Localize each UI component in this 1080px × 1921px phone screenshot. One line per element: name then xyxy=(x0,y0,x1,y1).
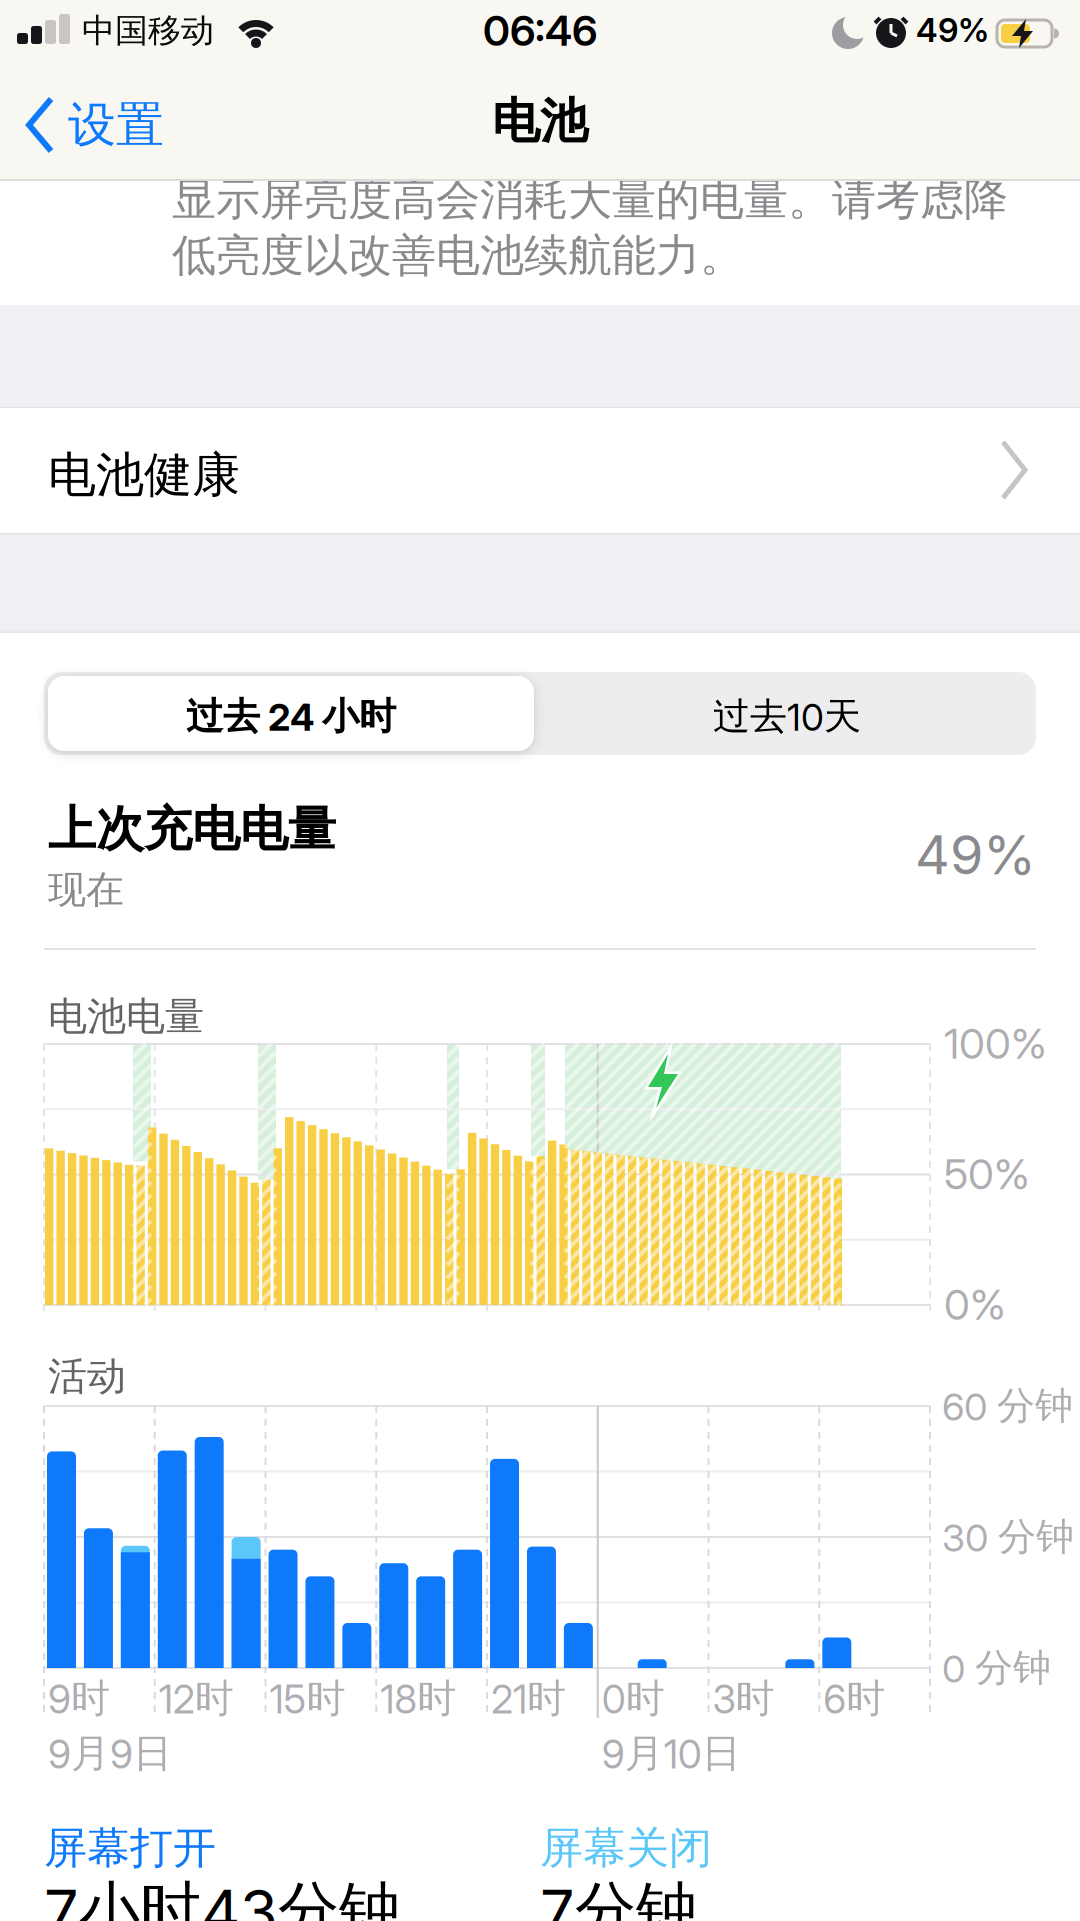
staticText: 设置 xyxy=(68,95,164,155)
staticText: 显示屏亮度高会消耗大量的电量。请考虑降 xyxy=(172,172,1008,227)
staticText: 49% xyxy=(915,822,1036,887)
staticText: 3时 xyxy=(712,1674,774,1723)
staticText: 21时 xyxy=(491,1674,566,1723)
staticText: 电池健康 xyxy=(48,445,240,505)
staticText: 12时 xyxy=(159,1674,234,1723)
staticText: 电池 xyxy=(492,91,588,151)
button[interactable]: 过去 24 小时 xyxy=(48,676,534,751)
staticText: 6时 xyxy=(823,1674,885,1723)
staticText: 15时 xyxy=(269,1674,345,1723)
staticText: 屏幕关闭 xyxy=(540,1821,712,1875)
staticText: 18时 xyxy=(380,1674,456,1723)
staticText: 06:46 xyxy=(483,5,597,56)
button[interactable]: 过去10天 xyxy=(538,676,1036,751)
button[interactable]: 电池健康 xyxy=(0,408,1080,532)
staticText: 9月9日 xyxy=(48,1729,172,1778)
staticText: 49% xyxy=(916,10,989,50)
staticText: 过去10天 xyxy=(713,693,861,740)
staticText: 30 分钟 xyxy=(942,1513,1074,1561)
staticText: 中国移动 xyxy=(82,10,214,52)
staticText: 电池电量 xyxy=(48,992,204,1041)
staticText: 100% xyxy=(944,1018,1047,1069)
staticText: 过去 24 小时 xyxy=(186,693,396,740)
staticText: 活动 xyxy=(48,1352,126,1401)
staticText: 现在 xyxy=(48,866,124,914)
staticText: 0时 xyxy=(602,1674,665,1723)
staticText: 屏幕打开 xyxy=(44,1821,216,1875)
staticText: 60 分钟 xyxy=(942,1382,1073,1430)
button[interactable]: 设置 xyxy=(26,96,164,154)
staticText: 0 分钟 xyxy=(942,1644,1051,1692)
staticText: 上次充电电量 xyxy=(48,799,336,859)
staticText: 9月10日 xyxy=(602,1729,741,1778)
staticText: 0% xyxy=(944,1279,1006,1330)
staticText: 9时 xyxy=(48,1674,110,1723)
staticText: 7小时43分钟 xyxy=(44,1872,400,1921)
staticText: 50% xyxy=(944,1148,1030,1199)
staticText: 低亮度以改善电池续航能力。 xyxy=(172,228,744,283)
staticText: 7分钟 xyxy=(540,1872,697,1921)
